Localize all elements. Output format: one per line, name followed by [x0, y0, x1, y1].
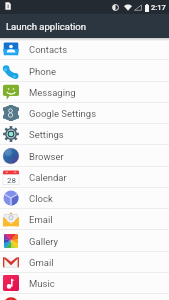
- staticText: Gallery: [29, 236, 59, 247]
- button[interactable]: Phone: [0, 61, 169, 82]
- button[interactable]: Google Settings: [0, 103, 169, 124]
- staticText: Gmail: [29, 257, 54, 268]
- staticText: Phone: [29, 66, 56, 77]
- staticText: Launch application: [6, 21, 87, 32]
- staticText: Email: [29, 214, 53, 225]
- button[interactable]: Clock: [0, 188, 169, 209]
- staticText: Browser: [29, 151, 64, 162]
- button[interactable]: Play Music: [0, 295, 169, 300]
- button[interactable]: Contacts: [0, 39, 169, 60]
- button[interactable]: Browser: [0, 146, 169, 167]
- button[interactable]: Messaging: [0, 82, 169, 103]
- button[interactable]: Music: [0, 273, 169, 294]
- staticText: 2:17: [151, 3, 166, 12]
- staticText: Messaging: [29, 87, 76, 98]
- staticText: Settings: [29, 129, 64, 140]
- staticText: Calendar: [29, 172, 67, 183]
- staticText: 28: [7, 176, 16, 185]
- staticText: Contacts: [29, 44, 68, 55]
- button[interactable]: 28: [0, 167, 169, 188]
- staticText: Clock: [29, 193, 53, 204]
- button[interactable]: Gallery: [0, 231, 169, 252]
- staticText: Music: [29, 278, 55, 289]
- staticText: Google Settings: [29, 108, 97, 119]
- button[interactable]: Gmail: [0, 252, 169, 273]
- button[interactable]: Email: [0, 209, 169, 230]
- button[interactable]: Settings: [0, 124, 169, 145]
- button[interactable]: Launch application: [0, 14, 169, 38]
